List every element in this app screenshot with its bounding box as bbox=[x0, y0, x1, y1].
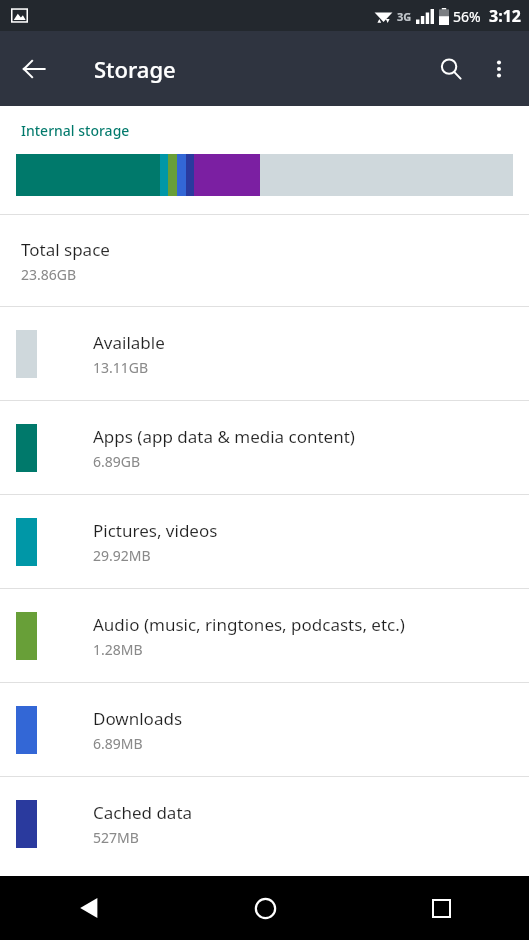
staticText: Available bbox=[93, 331, 165, 354]
staticText: Pictures, videos bbox=[93, 519, 218, 542]
staticText: 13.11GB bbox=[93, 358, 149, 377]
button[interactable]: Downloads bbox=[0, 683, 529, 776]
button[interactable]: Search bbox=[427, 45, 475, 93]
button[interactable]: Audio (music, ringtones, podcasts, etc.) bbox=[0, 589, 529, 682]
button[interactable]: Home bbox=[177, 876, 353, 940]
staticText: 6.89MB bbox=[93, 734, 143, 753]
staticText: Cached data bbox=[93, 801, 193, 824]
button[interactable]: Pictures, videos bbox=[0, 495, 529, 588]
staticText: 6.89GB bbox=[93, 452, 141, 471]
staticText: Downloads bbox=[93, 707, 183, 730]
button[interactable]: Apps (app data & media content) bbox=[0, 401, 529, 494]
button[interactable]: Cached data bbox=[0, 777, 529, 870]
button[interactable]: Recent apps bbox=[353, 876, 529, 940]
staticText: 56% bbox=[453, 7, 481, 26]
button[interactable]: Available bbox=[0, 307, 529, 400]
staticText: 3G bbox=[397, 9, 412, 24]
staticText: 23.86GB bbox=[21, 265, 77, 284]
staticText: 29.92MB bbox=[93, 546, 151, 565]
staticText: 527MB bbox=[93, 828, 139, 847]
button[interactable]: Back bbox=[0, 876, 177, 940]
staticText: Audio (music, ringtones, podcasts, etc.) bbox=[93, 613, 405, 636]
staticText: Storage bbox=[94, 54, 176, 84]
staticText: 3:12 bbox=[489, 5, 521, 27]
staticText: Internal storage bbox=[21, 121, 130, 140]
staticText: 1.28MB bbox=[93, 640, 143, 659]
staticText: Apps (app data & media content) bbox=[93, 425, 355, 448]
button[interactable]: More options bbox=[475, 45, 523, 93]
button[interactable]: Total space bbox=[0, 215, 529, 306]
staticText: Total space bbox=[21, 238, 110, 261]
button[interactable]: Navigate up bbox=[10, 45, 58, 93]
